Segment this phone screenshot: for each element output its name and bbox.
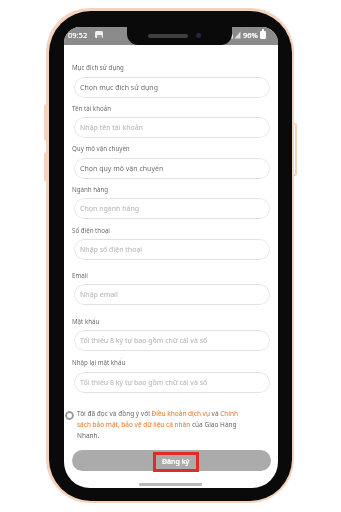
- button[interactable]: Tối thiểu 8 ký tự bao gồm chữ cái và số: [74, 372, 270, 393]
- staticText: Quy mô vận chuyển: [72, 144, 130, 152]
- button[interactable]: Chọn mục đích sử dụng: [74, 77, 270, 98]
- staticText: Nhập lại mật khẩu: [72, 358, 126, 366]
- staticText: Mục đích sử dụng: [72, 63, 124, 71]
- button[interactable]: Nhập số điện thoại: [74, 239, 270, 260]
- button[interactable]: Tôi đã đọc và đồng ý với Điều khoản dịch…: [77, 409, 239, 418]
- staticText: Nhập email: [80, 290, 118, 300]
- staticText: 96%: [243, 30, 258, 40]
- staticText: Tối thiểu 8 ký tự bao gồm chữ cái và số: [80, 336, 208, 346]
- button[interactable]: Nhập tên tài khoản: [74, 117, 270, 138]
- button[interactable]: Chọn ngành hàng: [74, 198, 270, 219]
- button[interactable]: [65, 411, 74, 420]
- staticText: 09:52: [68, 30, 88, 40]
- staticText: Nhanh.: [77, 431, 100, 440]
- staticText: Chọn mục đích sử dụng: [80, 83, 158, 93]
- staticText: Đăng ký: [162, 457, 190, 467]
- staticText: Tối thiểu 8 ký tự bao gồm chữ cái và số: [80, 378, 208, 388]
- staticText: Số điện thoại: [72, 226, 110, 234]
- button[interactable]: [72, 450, 271, 471]
- button[interactable]: Chọn quy mô vận chuyển: [74, 158, 270, 179]
- staticText: Chọn quy mô vận chuyển: [80, 164, 164, 174]
- staticText: Ngành hàng: [72, 185, 109, 193]
- staticText: sách bảo mật, bảo vệ dữ liệu cá nhân của…: [77, 420, 237, 429]
- staticText: Nhập số điện thoại: [80, 245, 143, 255]
- staticText: Mật khẩu: [72, 317, 100, 325]
- staticText: Tên tài khoản: [72, 104, 112, 112]
- button[interactable]: Nhập email: [74, 284, 270, 305]
- staticText: Email: [72, 271, 88, 279]
- staticText: Nhập tên tài khoản: [80, 123, 143, 133]
- button[interactable]: Tối thiểu 8 ký tự bao gồm chữ cái và số: [74, 330, 270, 351]
- staticText: Chọn ngành hàng: [80, 204, 140, 214]
